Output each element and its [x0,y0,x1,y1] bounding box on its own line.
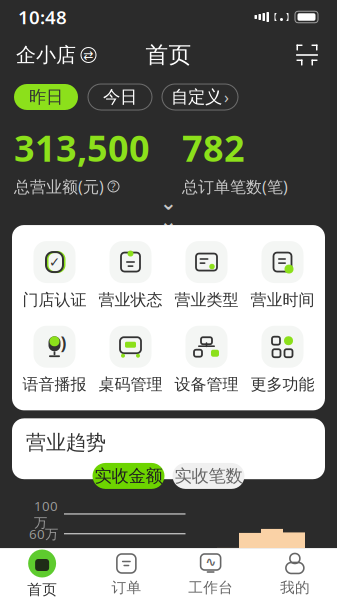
staticText: 设备管理 [174,375,238,394]
staticText: 营业趋势 [26,430,106,455]
staticText: ⇄ [83,48,93,62]
staticText: 首页 [27,580,57,598]
button[interactable]: 展开 [138,199,198,225]
button[interactable]: 营业时间 [244,241,320,310]
button[interactable]: 桌码管理 [92,326,168,394]
staticText: › [224,86,229,108]
staticText: 今日 [103,86,137,108]
button[interactable]: 昨日 [14,84,78,110]
staticText: 营业时间 [250,290,314,310]
button[interactable]: 企小店 [16,37,96,73]
button[interactable]: 今日 [88,84,152,110]
staticText: 语音播报 [22,375,86,394]
button[interactable]: 我的 [253,551,337,596]
staticText: 313,500 [14,124,150,172]
staticText: ✓ [49,254,60,270]
staticText: ⌄ [160,210,177,233]
staticText: 45万 [29,553,58,571]
button[interactable]: 设备管理 [168,326,244,394]
button[interactable]: 营业状态 [92,241,168,310]
button[interactable]: 更多功能 [244,326,320,394]
staticText: 门店认证 [22,290,86,310]
staticText: 首页 [145,41,191,69]
button[interactable]: ∿ [168,551,253,596]
staticText: 我的 [280,578,310,596]
staticText: ⌄ [160,191,177,214]
button[interactable]: ✓ [16,241,92,310]
staticText: 100万 [34,497,58,531]
staticText: ∿ [205,554,216,569]
button[interactable]: 营业类型 [168,241,244,310]
staticText: 桌码管理 [98,375,162,394]
staticText: 实收金额 [94,465,162,487]
staticText: 工作台 [188,578,233,596]
staticText: 10:48 [18,5,67,29]
staticText: ? [111,179,116,193]
staticText: 自定义 [171,86,222,108]
staticText: 更多功能 [250,375,314,394]
button[interactable]: ) [16,326,92,394]
staticText: 实收笔数 [174,465,242,487]
staticText: 782 [182,124,245,172]
button[interactable]: 订单 [84,551,168,596]
staticText: ) [60,331,66,354]
staticText: 营业类型 [174,290,238,310]
staticText: 营业状态 [98,290,162,310]
staticText: 60万 [29,525,58,543]
staticText: 企小店 [16,43,76,67]
button[interactable]: 扫一扫 [293,41,321,69]
button[interactable]: 实收笔数 [172,463,244,489]
button[interactable]: 实收金额 [92,463,164,489]
staticText: 总订单笔数(笔) [182,176,288,197]
staticText: 昨日 [29,86,63,108]
button[interactable]: 首页 [0,549,84,598]
staticText: 订单 [111,578,141,596]
staticText: 总营业额(元) [14,176,104,197]
button[interactable]: 自定义 [162,84,238,110]
